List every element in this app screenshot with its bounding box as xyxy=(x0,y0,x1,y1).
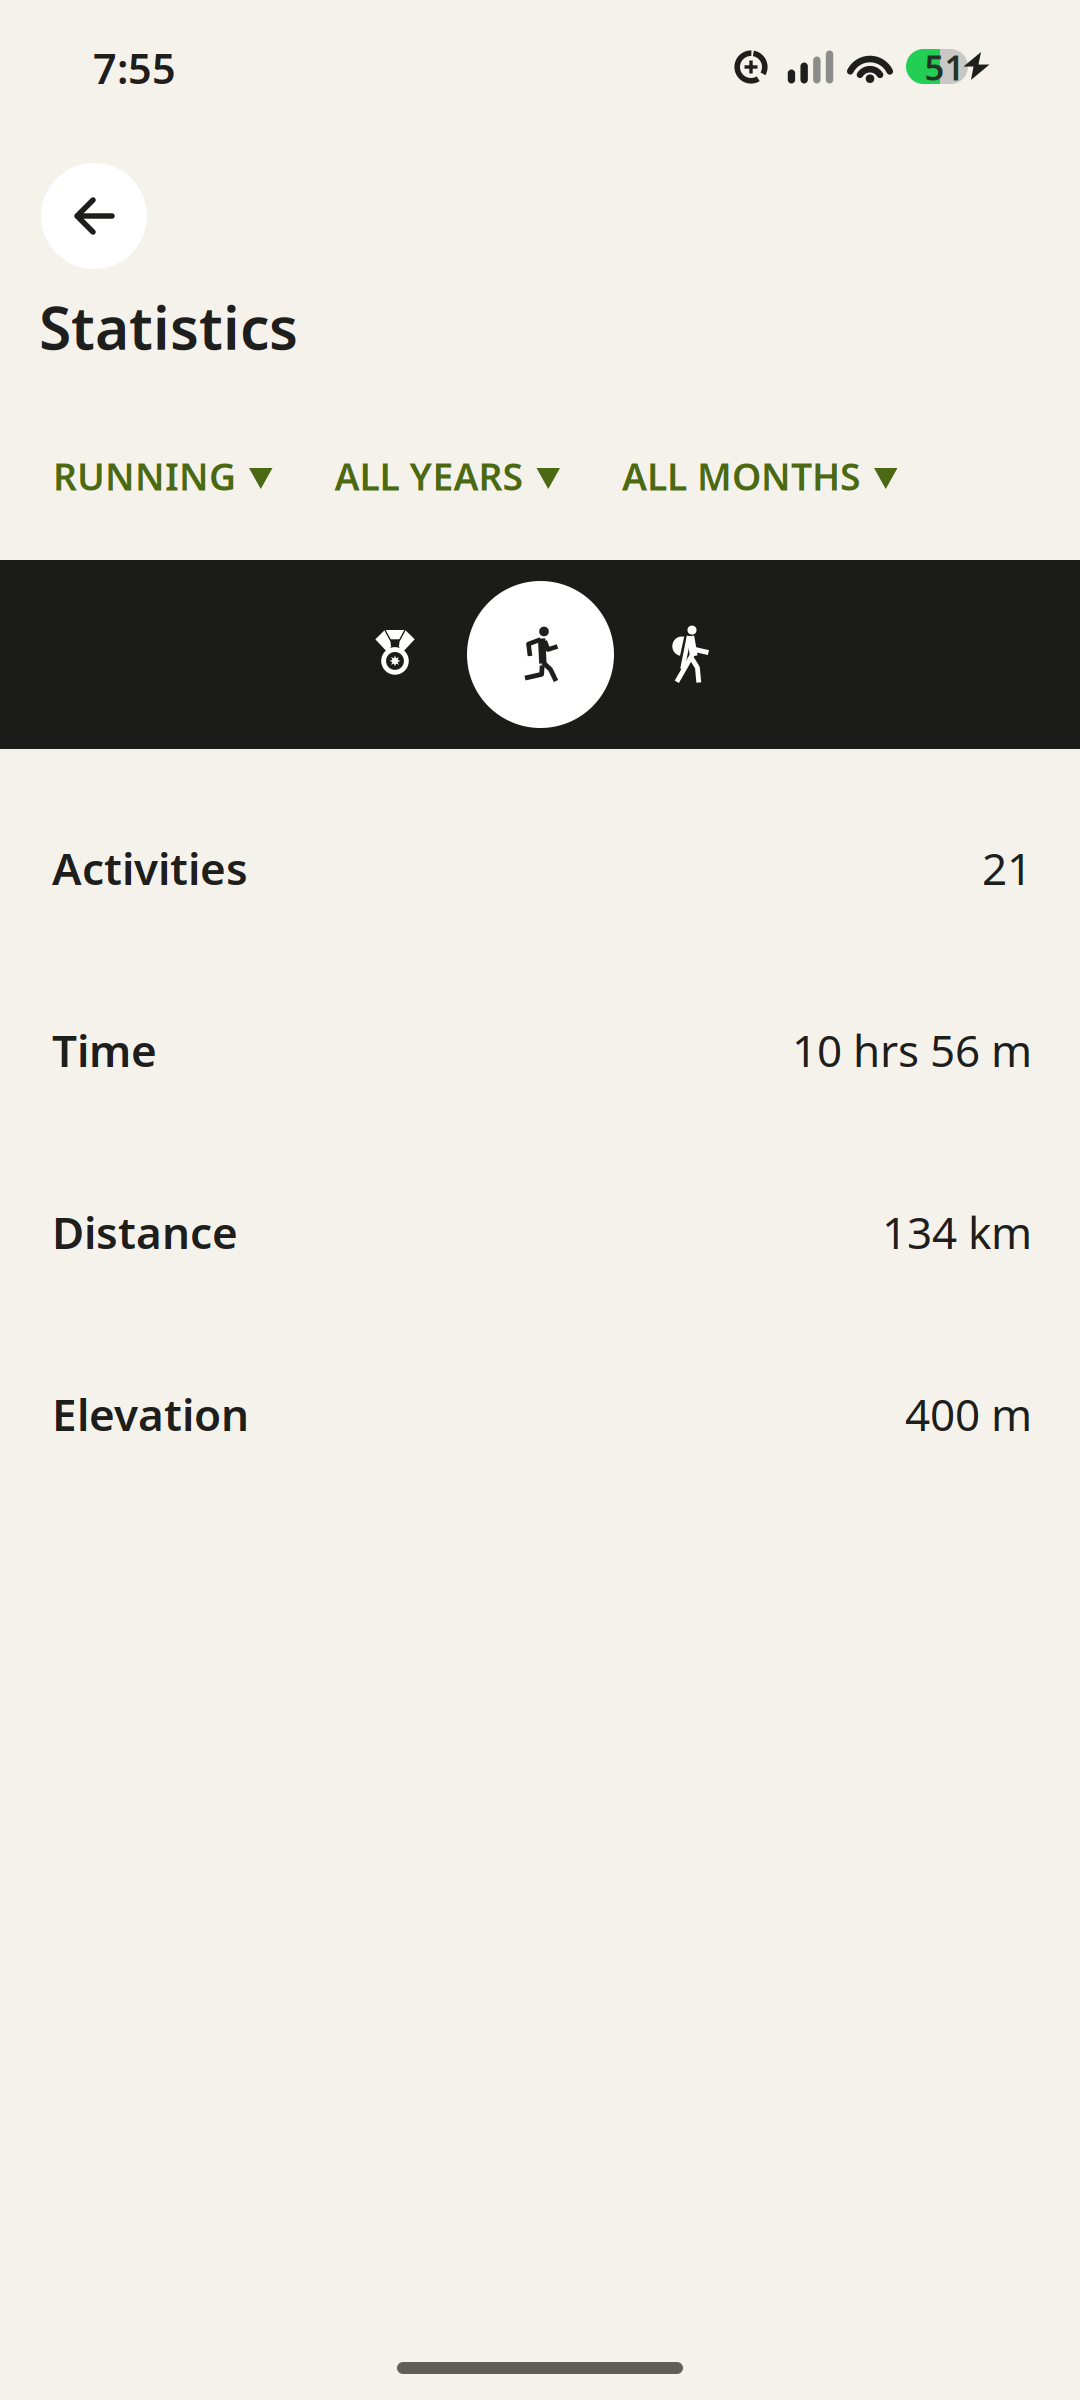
staticText: Time xyxy=(52,1021,157,1079)
staticText: 51 xyxy=(924,44,964,90)
button[interactable]: Running xyxy=(467,581,614,728)
staticText: Distance xyxy=(52,1203,238,1261)
staticText: 400 m xyxy=(905,1385,1032,1443)
staticText: ALL MONTHS xyxy=(622,451,861,501)
button[interactable]: Hiking xyxy=(670,625,709,684)
button[interactable]: ALL MONTHS xyxy=(622,456,897,496)
staticText: 7:55 xyxy=(93,41,176,95)
staticText: 21 xyxy=(982,839,1032,897)
staticText: 134 km xyxy=(882,1203,1032,1261)
staticText: ALL YEARS xyxy=(334,451,523,501)
staticText: 10 hrs 56 m xyxy=(792,1021,1032,1079)
button[interactable]: ALL YEARS xyxy=(334,456,560,496)
button[interactable]: Back xyxy=(41,163,147,269)
staticText: Elevation xyxy=(52,1385,249,1443)
button[interactable]: RUNNING xyxy=(53,456,272,496)
staticText: RUNNING xyxy=(53,451,236,501)
staticText: Statistics xyxy=(39,288,298,366)
button[interactable]: Awards xyxy=(374,630,416,683)
staticText: Activities xyxy=(52,839,248,897)
